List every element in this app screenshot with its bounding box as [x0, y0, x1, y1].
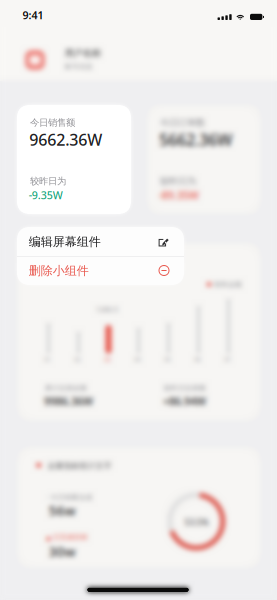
button[interactable]: 编辑屏幕组件: [17, 227, 184, 256]
staticText: 达量指标统计文字: [47, 461, 111, 471]
staticText: 编辑屏幕组件: [29, 234, 101, 249]
staticText: -89.35W: [159, 188, 199, 202]
staticText: 56w: [49, 501, 76, 519]
staticText: 9986.36W: [44, 394, 93, 408]
staticText: 30w: [49, 542, 76, 560]
staticText: 5662.36W: [159, 129, 232, 150]
staticText: 较昨日为: [30, 175, 66, 187]
staticText: ▲ 已完成目标: [46, 533, 88, 541]
staticText: +86.94W: [163, 394, 206, 408]
staticText: 今日销售额: [30, 117, 75, 128]
staticText: 1286.5: [96, 305, 118, 314]
staticText: 删除小组件: [29, 263, 89, 278]
staticText: 账号信息: [65, 62, 93, 71]
staticText: 9:41: [22, 8, 43, 22]
button[interactable]: 今日销售额: [17, 105, 131, 214]
staticText: 累计交易金额: [45, 384, 87, 392]
staticText: 较昨日为: [160, 175, 196, 187]
staticText: · 今日销量达成: [46, 492, 92, 501]
staticText: -9.35W: [29, 188, 63, 202]
staticText: 用户名称: [65, 47, 101, 59]
button[interactable]: 删除小组件: [17, 256, 184, 285]
staticText: 9662.36W: [29, 129, 102, 150]
staticText: 03: [104, 356, 110, 363]
staticText: 53.5%: [185, 517, 209, 528]
staticText: 今日订单数: [160, 117, 205, 128]
staticText: 销售金额: [214, 280, 242, 289]
staticText: 较昨日交易额: [164, 384, 206, 392]
